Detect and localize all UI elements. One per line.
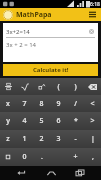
button[interactable]: , — [84, 148, 101, 166]
button[interactable]: 0 — [16, 148, 33, 166]
staticText: y — [6, 116, 10, 126]
button[interactable]: 7 — [16, 95, 33, 112]
staticText: 0 — [22, 152, 27, 162]
staticText: Calculate it! — [33, 66, 69, 74]
button[interactable]: 9 — [50, 95, 67, 112]
button[interactable]: Square root — [16, 78, 33, 95]
staticText: MathPapa — [16, 10, 52, 20]
staticText: 7 — [22, 99, 27, 109]
button[interactable]: Home — [43, 166, 59, 180]
button[interactable]: / — [67, 95, 84, 112]
staticText: | — [91, 134, 95, 144]
staticText: 3x+2=14 — [6, 28, 30, 36]
staticText: 3x + 2 = 14 — [6, 41, 37, 49]
button[interactable]: z — [0, 130, 16, 148]
button[interactable]: ) — [67, 78, 84, 95]
button[interactable]: 3x+2=14 — [6, 26, 95, 37]
staticText: 2 — [39, 134, 44, 144]
button[interactable]: 8 — [33, 95, 50, 112]
staticText: < — [90, 99, 95, 109]
button[interactable]: < — [84, 95, 101, 112]
button[interactable]: Fraction — [0, 78, 16, 95]
button[interactable]: + — [67, 148, 84, 166]
staticText: x — [6, 99, 10, 109]
staticText: 6:18 — [90, 1, 100, 8]
button[interactable]: Clear — [88, 28, 95, 35]
button[interactable]: 6 — [50, 112, 67, 130]
button[interactable]: Menu — [87, 9, 98, 20]
button[interactable]: Power — [33, 78, 50, 95]
staticText: 9 — [56, 99, 61, 109]
button[interactable] — [50, 148, 67, 166]
button[interactable]: Calculate it! — [3, 64, 98, 76]
staticText: + — [73, 152, 78, 162]
button[interactable]: 4 — [16, 112, 33, 130]
staticText: * — [74, 116, 78, 126]
staticText: . — [41, 152, 43, 162]
button[interactable]: y — [0, 112, 16, 130]
staticText: > — [90, 116, 95, 126]
staticText: z — [6, 134, 10, 144]
button[interactable]: 5 — [33, 112, 50, 130]
staticText: / — [74, 99, 77, 109]
button[interactable]: x — [0, 95, 16, 112]
staticText: 1 — [22, 134, 27, 144]
button[interactable]: 3 — [50, 130, 67, 148]
button[interactable] — [0, 148, 16, 166]
button[interactable]: > — [84, 112, 101, 130]
button[interactable]: Recents — [72, 166, 88, 180]
button[interactable]: * — [67, 112, 84, 130]
button[interactable]: 2 — [33, 130, 50, 148]
staticText: ( — [57, 82, 60, 92]
staticText: 3 — [56, 134, 61, 144]
staticText: ) — [74, 82, 77, 92]
staticText: 6 — [56, 116, 61, 126]
staticText: 4 — [22, 116, 27, 126]
button[interactable]: 1 — [16, 130, 33, 148]
staticText: 5 — [39, 116, 44, 126]
button[interactable]: Back — [13, 166, 29, 180]
staticText: , — [92, 152, 94, 162]
button[interactable]: - — [67, 130, 84, 148]
button[interactable]: | — [84, 130, 101, 148]
button[interactable]: ( — [50, 78, 67, 95]
staticText: - — [74, 134, 77, 144]
button[interactable]: . — [33, 148, 50, 166]
staticText: 8 — [39, 99, 44, 109]
button[interactable]: Backspace — [84, 78, 101, 95]
